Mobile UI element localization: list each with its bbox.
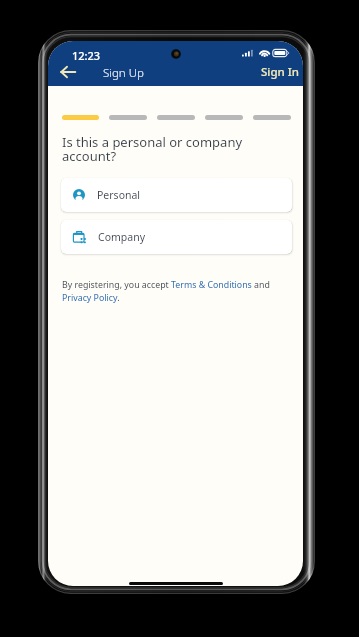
staticText: Is this a personal or company account? [62,133,279,165]
staticText: 12:23 [72,48,101,63]
staticText: Personal [97,188,141,202]
staticText: By registering, you accept Terms & Condi… [62,279,277,304]
staticText: Sign Up [103,65,144,81]
staticText: Sign In [261,64,300,80]
button[interactable]: Personal [61,178,292,212]
button[interactable]: Company [61,220,292,254]
button[interactable]: Sign In [256,60,303,84]
button[interactable]: Back [55,60,81,84]
staticText: Company [98,230,145,244]
